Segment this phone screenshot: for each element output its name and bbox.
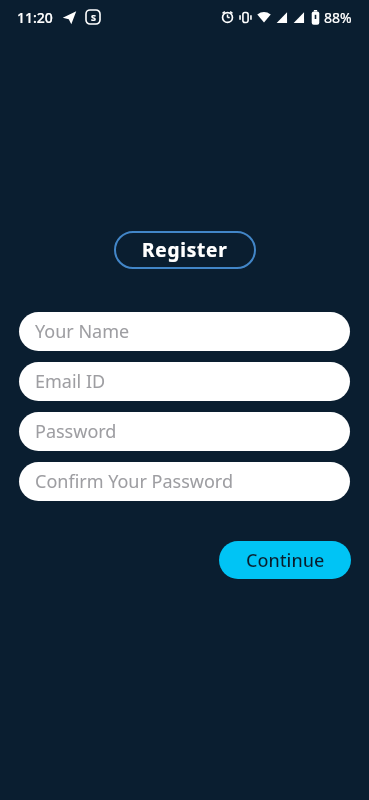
staticText: 88% [324, 8, 352, 27]
staticText: Register [142, 237, 228, 263]
staticText: Password [35, 419, 117, 444]
button[interactable]: Confirm Your Password [19, 462, 350, 501]
staticText: Email ID [35, 369, 106, 394]
staticText: 11:20 [17, 8, 53, 27]
staticText: Your Name [35, 319, 130, 344]
staticText: Confirm Your Password [35, 469, 233, 494]
button[interactable]: Your Name [19, 312, 350, 351]
button[interactable]: Password [19, 412, 350, 451]
staticText: Continue [246, 548, 325, 573]
button[interactable]: Email ID [19, 362, 350, 401]
button[interactable]: Register [114, 231, 256, 269]
button[interactable]: Continue [219, 541, 351, 579]
staticText: S [91, 11, 96, 23]
